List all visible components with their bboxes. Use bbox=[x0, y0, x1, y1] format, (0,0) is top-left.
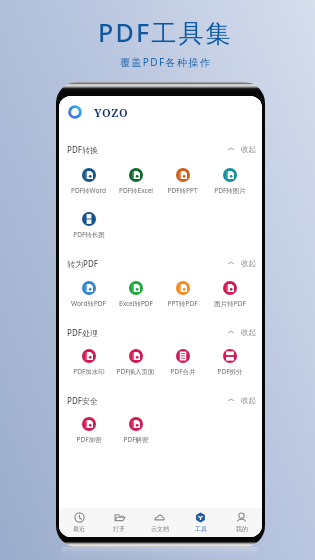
staticText: PDF转长图 bbox=[73, 230, 105, 239]
button[interactable]: PDF安全 bbox=[59, 390, 262, 410]
staticText: 收起 bbox=[241, 145, 256, 154]
button[interactable]: PDF转PPT bbox=[159, 168, 206, 195]
button[interactable]: Excel转PDF bbox=[112, 281, 159, 308]
staticText: 图片转PDF bbox=[214, 299, 246, 308]
button[interactable]: PPT转PDF bbox=[159, 281, 206, 308]
staticText: PDF转PPT bbox=[167, 186, 198, 195]
button[interactable]: 云文档 bbox=[139, 508, 180, 537]
staticText: 收起 bbox=[241, 259, 256, 268]
staticText: 收起 bbox=[241, 328, 256, 337]
button[interactable]: PDF转Excel bbox=[112, 168, 159, 195]
button[interactable]: PDF合并 bbox=[159, 349, 206, 376]
staticText: PDF合并 bbox=[170, 367, 196, 376]
button[interactable]: 打开 bbox=[99, 508, 139, 537]
staticText: Excel转PDF bbox=[119, 299, 153, 308]
button[interactable]: 工具 bbox=[180, 508, 221, 537]
button[interactable]: PDF转换 bbox=[59, 139, 262, 159]
button[interactable]: 转为PDF bbox=[59, 253, 262, 273]
staticText: PDF转图片 bbox=[214, 186, 246, 195]
staticText: PDF处理 bbox=[67, 327, 98, 338]
button[interactable]: 最近 bbox=[59, 508, 99, 537]
staticText: 云文档 bbox=[151, 525, 169, 533]
staticText: 打开 bbox=[113, 525, 125, 533]
staticText: 覆盖PDF各种操作 bbox=[120, 55, 212, 69]
staticText: PDF安全 bbox=[67, 395, 98, 406]
staticText: 工具 bbox=[195, 525, 207, 533]
staticText: YOZO bbox=[94, 105, 129, 120]
staticText: PDF转Word bbox=[71, 186, 106, 195]
staticText: 收起 bbox=[241, 396, 256, 405]
staticText: 转为PDF bbox=[67, 258, 98, 269]
button[interactable]: PDF处理 bbox=[59, 322, 262, 342]
button[interactable]: 图片转PDF bbox=[206, 281, 253, 308]
button[interactable]: PDF插入页面 bbox=[112, 349, 159, 376]
staticText: PDF解密 bbox=[123, 435, 149, 444]
button[interactable]: PDF解密 bbox=[112, 417, 159, 444]
staticText: PDF工具集 bbox=[98, 15, 233, 49]
staticText: PDF转换 bbox=[67, 144, 98, 155]
staticText: Word转PDF bbox=[71, 299, 106, 308]
staticText: 我的 bbox=[236, 525, 248, 533]
button[interactable]: PDF拆分 bbox=[206, 349, 253, 376]
staticText: PDF加水印 bbox=[73, 367, 105, 376]
staticText: PPT转PDF bbox=[167, 299, 198, 308]
staticText: PDF拆分 bbox=[217, 367, 243, 376]
staticText: PDF转Excel bbox=[119, 186, 153, 195]
button[interactable]: PDF加密 bbox=[65, 417, 112, 444]
button[interactable]: PDF转图片 bbox=[206, 168, 253, 195]
staticText: PDF加密 bbox=[76, 435, 102, 444]
button[interactable]: PDF加水印 bbox=[65, 349, 112, 376]
staticText: PDF插入页面 bbox=[116, 367, 155, 376]
button[interactable]: PDF转Word bbox=[65, 168, 112, 195]
button[interactable]: Word转PDF bbox=[65, 281, 112, 308]
button[interactable]: 我的 bbox=[221, 508, 262, 537]
staticText: 最近 bbox=[73, 525, 85, 533]
button[interactable]: PDF转长图 bbox=[65, 212, 112, 239]
